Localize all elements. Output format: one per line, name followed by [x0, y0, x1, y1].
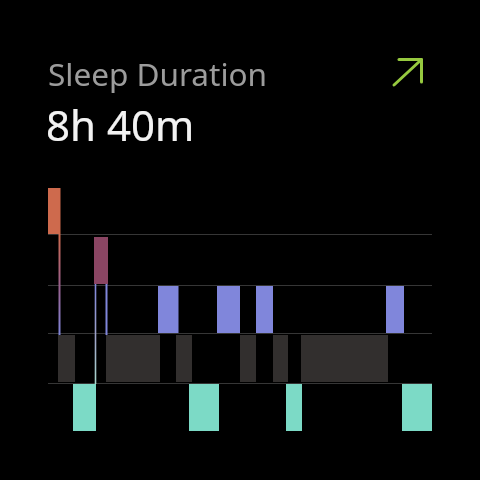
button[interactable]: [384, 50, 432, 98]
staticText: Sleep Duration: [48, 52, 268, 95]
staticText: 8h 40m: [46, 96, 195, 153]
